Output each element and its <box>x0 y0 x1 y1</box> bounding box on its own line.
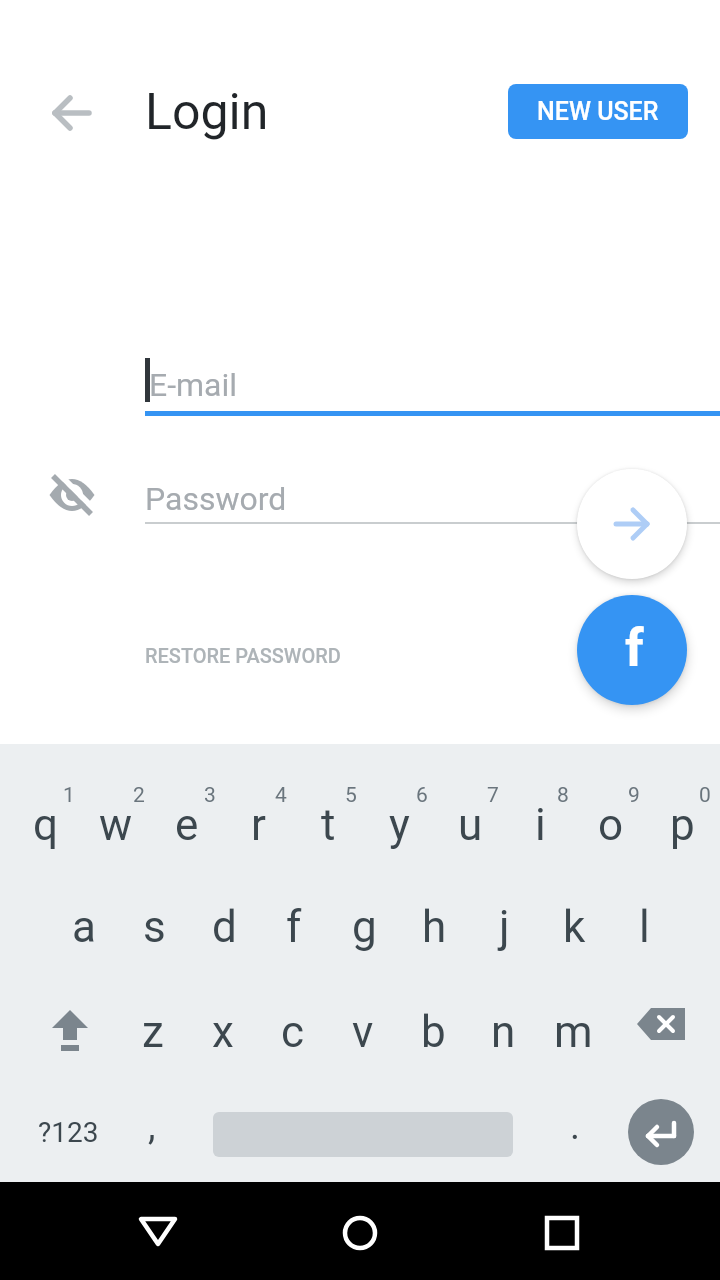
button[interactable]: w <box>83 792 149 858</box>
staticText: z <box>142 1006 164 1058</box>
staticText: . <box>570 1104 581 1149</box>
staticText: u <box>458 799 483 851</box>
button[interactable]: f <box>261 894 327 960</box>
button[interactable]: o <box>578 792 644 858</box>
button[interactable] <box>328 1201 392 1265</box>
button[interactable] <box>48 470 96 518</box>
staticText: NEW USER <box>537 97 659 126</box>
button[interactable] <box>40 81 104 145</box>
button[interactable]: u <box>437 792 503 858</box>
staticText: ?123 <box>38 1116 99 1149</box>
staticText: w <box>99 799 133 851</box>
button[interactable]: . <box>545 1096 605 1156</box>
staticText: l <box>639 901 650 953</box>
staticText: c <box>281 1006 305 1058</box>
staticText: r <box>251 799 266 851</box>
staticText: f <box>286 901 302 953</box>
button[interactable]: n <box>470 999 536 1065</box>
staticText: v <box>352 1006 374 1058</box>
staticText: y <box>389 799 410 851</box>
button[interactable]: ?123 <box>30 1104 106 1160</box>
staticText: Login <box>145 83 269 142</box>
button[interactable]: q <box>13 792 79 858</box>
button[interactable]: k <box>541 894 607 960</box>
button[interactable] <box>126 1199 190 1263</box>
staticText: 8 <box>557 783 569 808</box>
button[interactable]: , <box>122 1096 182 1156</box>
staticText: 2 <box>133 783 145 808</box>
staticText: k <box>563 901 586 953</box>
staticText: Password <box>145 480 287 518</box>
staticText: b <box>421 1006 446 1058</box>
staticText: a <box>72 901 96 953</box>
button[interactable]: y <box>366 792 432 858</box>
button[interactable] <box>40 1002 100 1062</box>
button[interactable]: d <box>191 894 257 960</box>
button[interactable] <box>628 1099 694 1165</box>
button[interactable]: x <box>190 999 256 1065</box>
button[interactable]: b <box>400 999 466 1065</box>
button[interactable]: a <box>51 894 117 960</box>
staticText: 5 <box>345 783 357 808</box>
staticText: o <box>598 799 624 851</box>
staticText: i <box>535 799 546 851</box>
button[interactable]: z <box>120 999 186 1065</box>
button[interactable] <box>530 1201 594 1265</box>
staticText: 6 <box>416 783 428 808</box>
staticText: x <box>212 1006 234 1058</box>
staticText: s <box>143 901 166 953</box>
button[interactable]: j <box>471 894 537 960</box>
button[interactable] <box>577 469 687 579</box>
staticText: t <box>321 799 336 851</box>
button[interactable]: m <box>540 999 606 1065</box>
staticText: g <box>352 901 377 953</box>
button[interactable]: NEW USER <box>508 84 688 139</box>
button[interactable]: f <box>577 595 687 705</box>
staticText: m <box>554 1006 593 1058</box>
staticText: 1 <box>63 783 75 808</box>
staticText: d <box>212 901 237 953</box>
staticText: 0 <box>699 783 711 808</box>
staticText: j <box>499 901 510 953</box>
staticText: n <box>491 1006 516 1058</box>
staticText: RESTORE PASSWORD <box>145 644 341 667</box>
staticText: , <box>148 1104 156 1149</box>
button[interactable]: h <box>401 894 467 960</box>
button[interactable]: RESTORE PASSWORD <box>145 644 341 667</box>
staticText: 7 <box>487 783 499 808</box>
button[interactable]: v <box>330 999 396 1065</box>
button[interactable]: p <box>649 792 715 858</box>
button[interactable]: s <box>121 894 187 960</box>
button[interactable]: g <box>331 894 397 960</box>
staticText: E-mail <box>149 366 238 404</box>
button[interactable]: l <box>611 894 677 960</box>
staticText: 4 <box>275 783 287 808</box>
staticText: q <box>33 799 59 851</box>
staticText: 9 <box>628 783 640 808</box>
staticText: p <box>670 799 695 851</box>
button[interactable] <box>630 1002 694 1062</box>
button[interactable]: r <box>225 792 291 858</box>
staticText: 3 <box>204 783 216 808</box>
button[interactable]: t <box>295 792 361 858</box>
button[interactable]: i <box>507 792 573 858</box>
staticText: h <box>422 901 447 953</box>
button[interactable]: c <box>260 999 326 1065</box>
staticText: e <box>175 799 199 851</box>
button[interactable]: e <box>154 792 220 858</box>
staticText: f <box>625 618 644 679</box>
